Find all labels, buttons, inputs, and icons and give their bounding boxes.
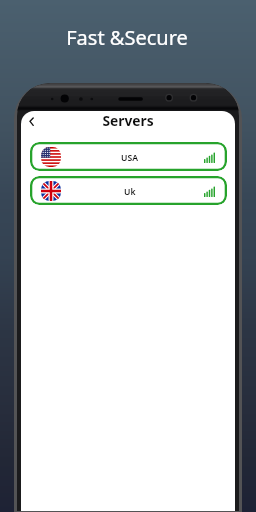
staticText: Uk	[124, 186, 136, 198]
button[interactable]: Uk	[30, 176, 227, 205]
button[interactable]: USA	[30, 142, 227, 171]
button[interactable]: Back	[25, 113, 38, 131]
staticText: Servers	[21, 111, 235, 130]
staticText: USA	[121, 152, 138, 164]
staticText: Fast &Secure	[0, 24, 255, 51]
